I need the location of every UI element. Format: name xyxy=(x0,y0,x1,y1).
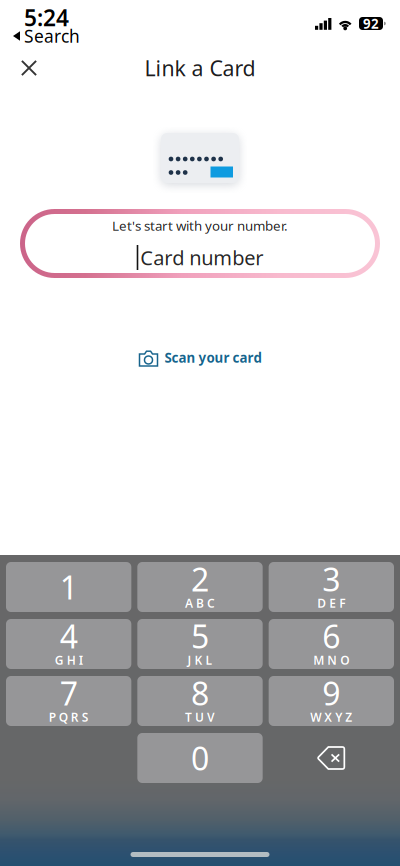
button[interactable]: 8 xyxy=(137,676,263,726)
button[interactable]: 7 xyxy=(6,676,131,726)
staticText: 0 xyxy=(191,737,209,779)
staticText: 9 xyxy=(322,672,340,714)
button[interactable]: 9 xyxy=(269,676,394,726)
button[interactable]: 1 xyxy=(6,562,131,612)
button[interactable]: 5 xyxy=(137,619,263,669)
staticText: 1 xyxy=(60,566,78,608)
button[interactable]: 6 xyxy=(269,619,394,669)
staticText: 7 xyxy=(60,672,78,714)
staticText: 2 xyxy=(191,558,209,600)
staticText: P Q R S xyxy=(49,709,89,725)
staticText: D E F xyxy=(317,595,345,611)
staticText: 5 xyxy=(191,615,209,657)
button[interactable]: Scan your card xyxy=(138,348,261,367)
staticText: Card number xyxy=(140,244,263,271)
staticText: A B C xyxy=(185,595,215,611)
button[interactable]: 4 xyxy=(6,619,131,669)
staticText: 92 xyxy=(363,15,379,32)
staticText: J K L xyxy=(187,652,212,668)
staticText: 6 xyxy=(322,615,340,657)
staticText: Link a Card xyxy=(144,54,255,82)
staticText: Let's start with your number. xyxy=(112,217,288,234)
staticText: 4 xyxy=(60,615,78,657)
staticText: T U V xyxy=(185,709,215,725)
staticText: Search xyxy=(24,24,80,47)
staticText: 3 xyxy=(322,558,340,600)
button[interactable]: Delete xyxy=(269,733,394,783)
staticText: M N O xyxy=(313,652,349,668)
button[interactable]: 0 xyxy=(137,733,263,783)
staticText: 8 xyxy=(191,672,209,714)
staticText: 5:24 xyxy=(24,2,69,32)
button[interactable]: Close xyxy=(7,48,51,88)
button[interactable]: 2 xyxy=(137,562,263,612)
button[interactable]: 3 xyxy=(269,562,394,612)
staticText: W X Y Z xyxy=(310,709,352,725)
staticText: Scan your card xyxy=(164,349,261,366)
staticText: G H I xyxy=(55,652,83,668)
